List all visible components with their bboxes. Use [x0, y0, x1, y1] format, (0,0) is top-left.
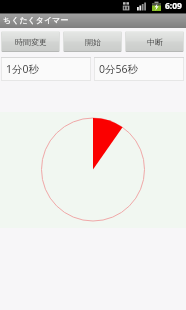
- button[interactable]: 0分56秒: [94, 57, 184, 81]
- staticText: 中断: [147, 37, 163, 47]
- staticText: 6:09: [165, 0, 182, 12]
- staticText: ちくたくタイマー: [3, 15, 69, 25]
- staticText: 1分0秒: [6, 62, 40, 76]
- staticText: 開始: [85, 37, 101, 47]
- button[interactable]: 開始: [63, 31, 122, 52]
- button[interactable]: 1分0秒: [1, 57, 91, 81]
- staticText: 0分56秒: [99, 62, 139, 76]
- button[interactable]: 時間変更: [1, 31, 60, 52]
- staticText: 時間変更: [15, 37, 47, 47]
- button[interactable]: Timer dial: [0, 112, 186, 228]
- button[interactable]: 中断: [125, 31, 184, 52]
